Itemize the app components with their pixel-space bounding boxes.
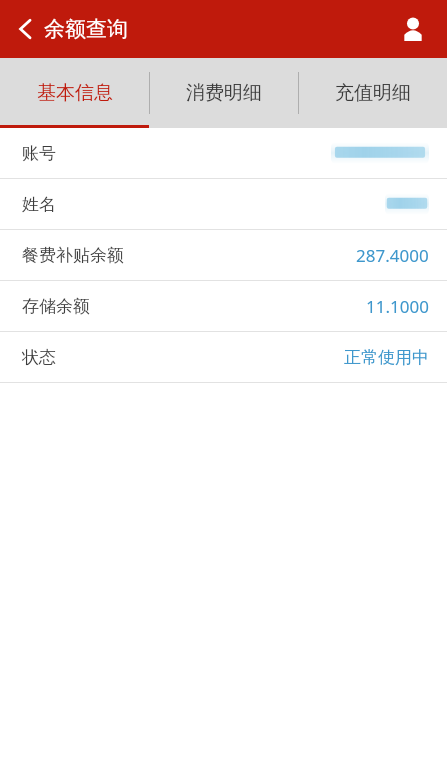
staticText: 状态 [22, 347, 56, 368]
staticText: 餐费补贴余额 [22, 245, 124, 266]
button[interactable]: Back [0, 6, 142, 52]
button[interactable]: 消费明细 [150, 58, 298, 128]
staticText: 287.4000 [356, 244, 429, 267]
button[interactable]: Account [389, 5, 437, 53]
button[interactable]: 状态 [0, 332, 447, 382]
other: Back [18, 18, 32, 40]
staticText: 充值明细 [335, 81, 411, 105]
staticText: 消费明细 [186, 81, 262, 105]
button[interactable]: 账号 [0, 128, 447, 178]
staticText: 姓名 [22, 194, 56, 215]
button[interactable]: 姓名 [0, 179, 447, 229]
staticText: 存储余额 [22, 296, 90, 317]
staticText: 账号 [22, 143, 56, 164]
staticText: 11.1000 [366, 295, 429, 318]
staticText: 正常使用中 [344, 347, 429, 368]
button[interactable]: 基本信息 [0, 58, 149, 128]
staticText: 基本信息 [37, 81, 113, 105]
button[interactable]: 存储余额 [0, 281, 447, 331]
button[interactable]: 充值明细 [299, 58, 447, 128]
button[interactable]: 餐费补贴余额 [0, 230, 447, 280]
staticText: 余额查询 [44, 16, 128, 42]
